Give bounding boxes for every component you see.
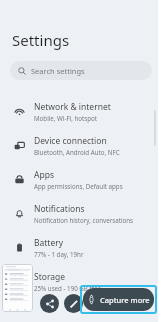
staticText: Capture more: [100, 295, 150, 305]
staticText: Apps: [34, 169, 54, 181]
staticText: Search settings: [31, 66, 85, 76]
staticText: Notification history, conversations: [34, 216, 134, 224]
button[interactable]: Device connection: [0, 128, 158, 162]
staticText: Device connection: [34, 135, 107, 147]
button[interactable]: Battery: [0, 230, 158, 264]
button[interactable]: Search settings: [10, 61, 152, 80]
staticText: 77% - 1 day, 19hr: [34, 250, 84, 258]
staticText: Battery: [34, 237, 64, 249]
staticText: App permissions, Default apps: [34, 182, 123, 190]
button[interactable]: Storage: [0, 264, 158, 298]
button[interactable]: Share: [40, 294, 59, 313]
button[interactable]: Screenshot preview: [2, 264, 33, 312]
staticText: Mobile, Wi-Fi, hotspot: [34, 114, 98, 122]
button[interactable]: Notifications: [0, 196, 158, 230]
staticText: Notifications: [34, 203, 85, 215]
staticText: Storage: [34, 271, 66, 283]
button[interactable]: Network & internet: [0, 94, 158, 128]
staticText: Bluetooth, Android Auto, NFC: [34, 148, 120, 156]
button[interactable]: Apps: [0, 162, 158, 196]
staticText: Settings: [12, 30, 70, 50]
staticText: Network & internet: [34, 101, 111, 113]
button[interactable]: Capture more: [83, 288, 154, 311]
button[interactable]: Edit: [64, 294, 83, 313]
staticText: 25% used - 190 GB free: [34, 284, 102, 292]
